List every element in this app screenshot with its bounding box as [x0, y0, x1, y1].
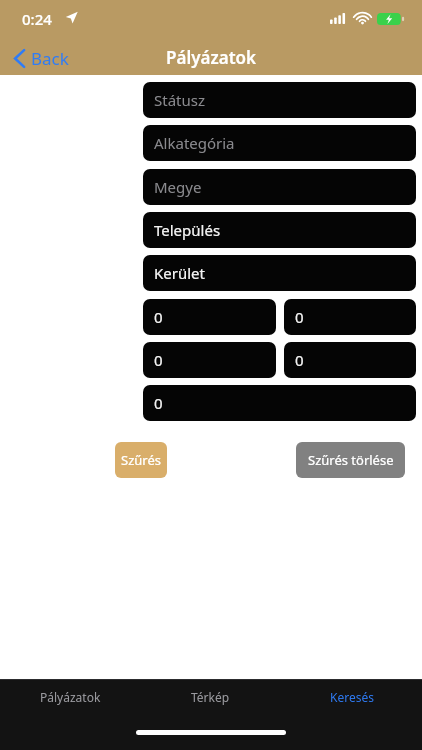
button[interactable]: 0 [143, 299, 276, 335]
button[interactable]: Település [143, 212, 416, 248]
staticText: 0:24 [22, 9, 52, 29]
staticText: Szűrés törlése [308, 451, 394, 469]
button[interactable]: Státusz [143, 82, 416, 118]
button[interactable]: Kerület [143, 255, 416, 291]
button[interactable]: 0 [143, 385, 416, 421]
staticText: Alkategória [154, 133, 235, 153]
staticText: 0 [295, 350, 304, 370]
staticText: 0 [154, 350, 163, 370]
button[interactable]: Szűrés törlése [296, 442, 405, 478]
staticText: Megye [154, 177, 202, 197]
button[interactable]: 0 [143, 342, 276, 378]
staticText: Térkép [191, 689, 230, 705]
button[interactable]: 0 [284, 342, 416, 378]
button[interactable]: Megye [143, 169, 416, 205]
button[interactable]: Szűrés [115, 442, 167, 478]
staticText: Pályázatok [0, 46, 422, 69]
button[interactable]: Keresés [281, 680, 422, 714]
staticText: Szűrés [121, 451, 161, 469]
staticText: Keresés [330, 689, 374, 705]
button[interactable]: Back [10, 44, 73, 73]
button[interactable]: Pályázatok [0, 680, 140, 714]
staticText: Státusz [154, 90, 205, 110]
staticText: Pályázatok [40, 689, 101, 705]
staticText: 0 [154, 393, 163, 413]
button[interactable]: 0 [284, 299, 416, 335]
staticText: 0 [154, 307, 163, 327]
staticText: Kerület [154, 263, 205, 283]
staticText: Back [31, 47, 69, 70]
button[interactable]: Térkép [140, 680, 281, 714]
button[interactable]: Alkategória [143, 125, 416, 161]
staticText: 0 [295, 307, 304, 327]
staticText: Település [154, 220, 221, 240]
